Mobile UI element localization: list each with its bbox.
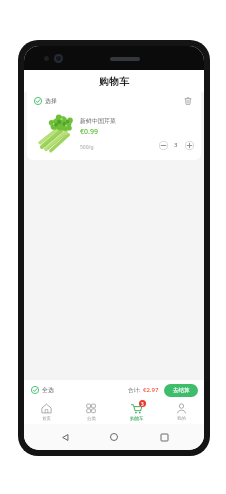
button[interactable]: 首页: [24, 400, 69, 424]
staticText: 500/g: [80, 144, 94, 151]
staticText: 分类: [87, 416, 96, 422]
button[interactable]: Recent apps: [155, 428, 173, 446]
staticText: 全选: [42, 386, 54, 394]
button[interactable]: Decrease quantity: [157, 139, 169, 151]
staticText: 合计:: [128, 386, 141, 394]
staticText: 新鲜中国芹菜: [80, 117, 116, 125]
staticText: 3: [174, 141, 178, 149]
staticText: 选择: [45, 97, 57, 105]
staticText: €0.99: [80, 127, 98, 137]
staticText: 3: [141, 401, 144, 407]
staticText: 购物车: [130, 416, 144, 422]
staticText: €2.97: [143, 386, 159, 394]
button[interactable]: 我的: [159, 400, 204, 424]
button[interactable]: 选择: [33, 95, 58, 107]
button[interactable]: 全选: [30, 384, 55, 396]
button[interactable]: 分类: [69, 400, 114, 424]
staticText: 去结算: [173, 387, 190, 394]
button[interactable]: 3: [114, 400, 159, 424]
button[interactable]: Back: [56, 428, 74, 446]
button[interactable]: 去结算: [164, 384, 198, 397]
button[interactable]: 新鲜中国芹菜: [27, 110, 201, 158]
button[interactable]: Increase quantity: [183, 139, 195, 151]
button[interactable]: Home: [105, 428, 123, 446]
staticText: 首页: [42, 416, 51, 422]
staticText: 我的: [177, 416, 186, 422]
button[interactable]: Delete: [181, 94, 195, 108]
staticText: 购物车: [99, 75, 129, 88]
